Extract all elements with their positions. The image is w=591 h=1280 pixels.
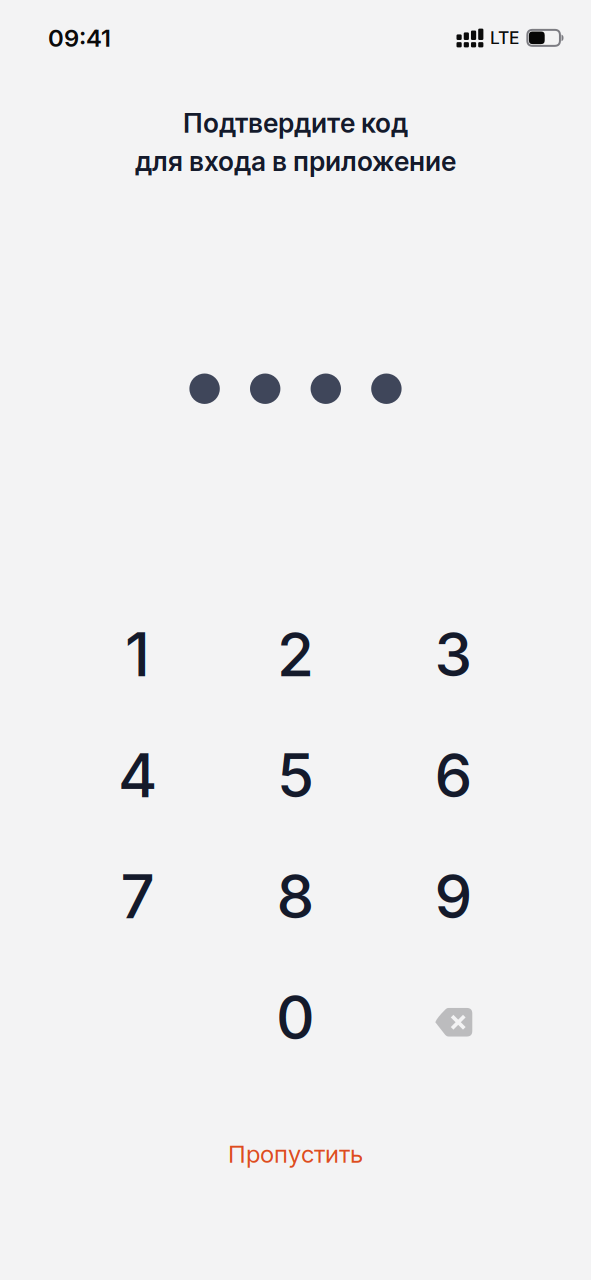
button[interactable]: 0 [216,957,374,1078]
button[interactable]: Пропустить [195,1132,395,1176]
staticText: 0 [276,981,315,1054]
button[interactable]: 3 [374,594,532,715]
button[interactable]: 6 [374,715,532,836]
staticText: 2 [277,618,314,691]
staticText: Подтвердите код [183,107,408,139]
button[interactable]: 1 [58,594,216,715]
staticText: 6 [434,739,472,812]
staticText: 9 [434,860,472,933]
staticText: 09:41 [48,23,111,52]
button[interactable]: 2 [216,594,374,715]
staticText: 4 [118,739,157,812]
button[interactable]: 8 [216,836,374,957]
staticText: 7 [120,860,154,933]
button[interactable]: Удалить [374,957,532,1078]
staticText: Пропустить [228,1139,363,1168]
staticText: LTE [490,27,519,48]
button[interactable]: 4 [58,715,216,836]
button[interactable]: 7 [58,836,216,957]
staticText: 8 [276,860,314,933]
button[interactable]: 5 [216,715,374,836]
button[interactable]: 9 [374,836,532,957]
staticText: 5 [277,739,314,812]
staticText: для входа в приложение [135,145,456,178]
staticText: 1 [125,618,150,691]
staticText: 3 [434,618,472,691]
